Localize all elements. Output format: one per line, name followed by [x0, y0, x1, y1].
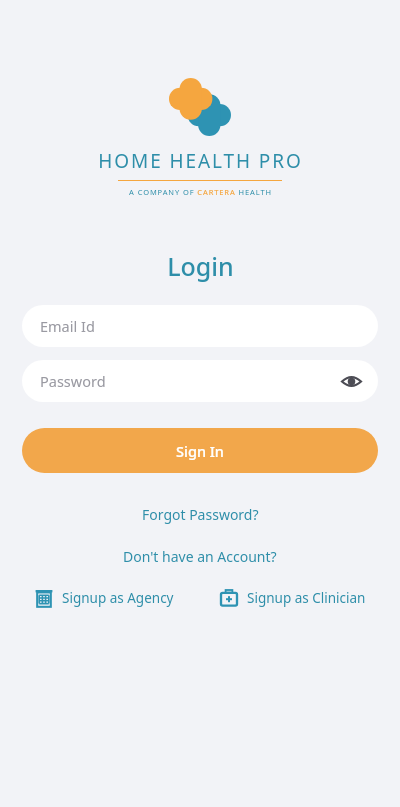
staticText: Email Id	[40, 316, 95, 336]
button[interactable]: Sign In	[22, 428, 378, 473]
staticText: Don't have an Account?	[123, 547, 277, 566]
button[interactable]: Forgot Password?	[134, 501, 267, 528]
staticText: Sign In	[176, 441, 224, 461]
button[interactable]: Signup as Clinician	[215, 584, 370, 612]
staticText: Signup as Clinician	[247, 589, 366, 607]
button[interactable]: Show password	[338, 368, 364, 394]
button[interactable]: Password	[22, 360, 378, 402]
staticText: Login	[167, 249, 234, 283]
staticText: Password	[40, 371, 106, 391]
staticText: Signup as Agency	[62, 589, 174, 607]
button[interactable]: Signup as Agency	[30, 584, 178, 612]
staticText: Forgot Password?	[142, 505, 259, 524]
button[interactable]: Email Id	[22, 305, 378, 347]
staticText: A COMPANY OF CARTERA HEALTH	[129, 187, 272, 197]
staticText: HOME HEALTH PRO	[98, 148, 303, 174]
